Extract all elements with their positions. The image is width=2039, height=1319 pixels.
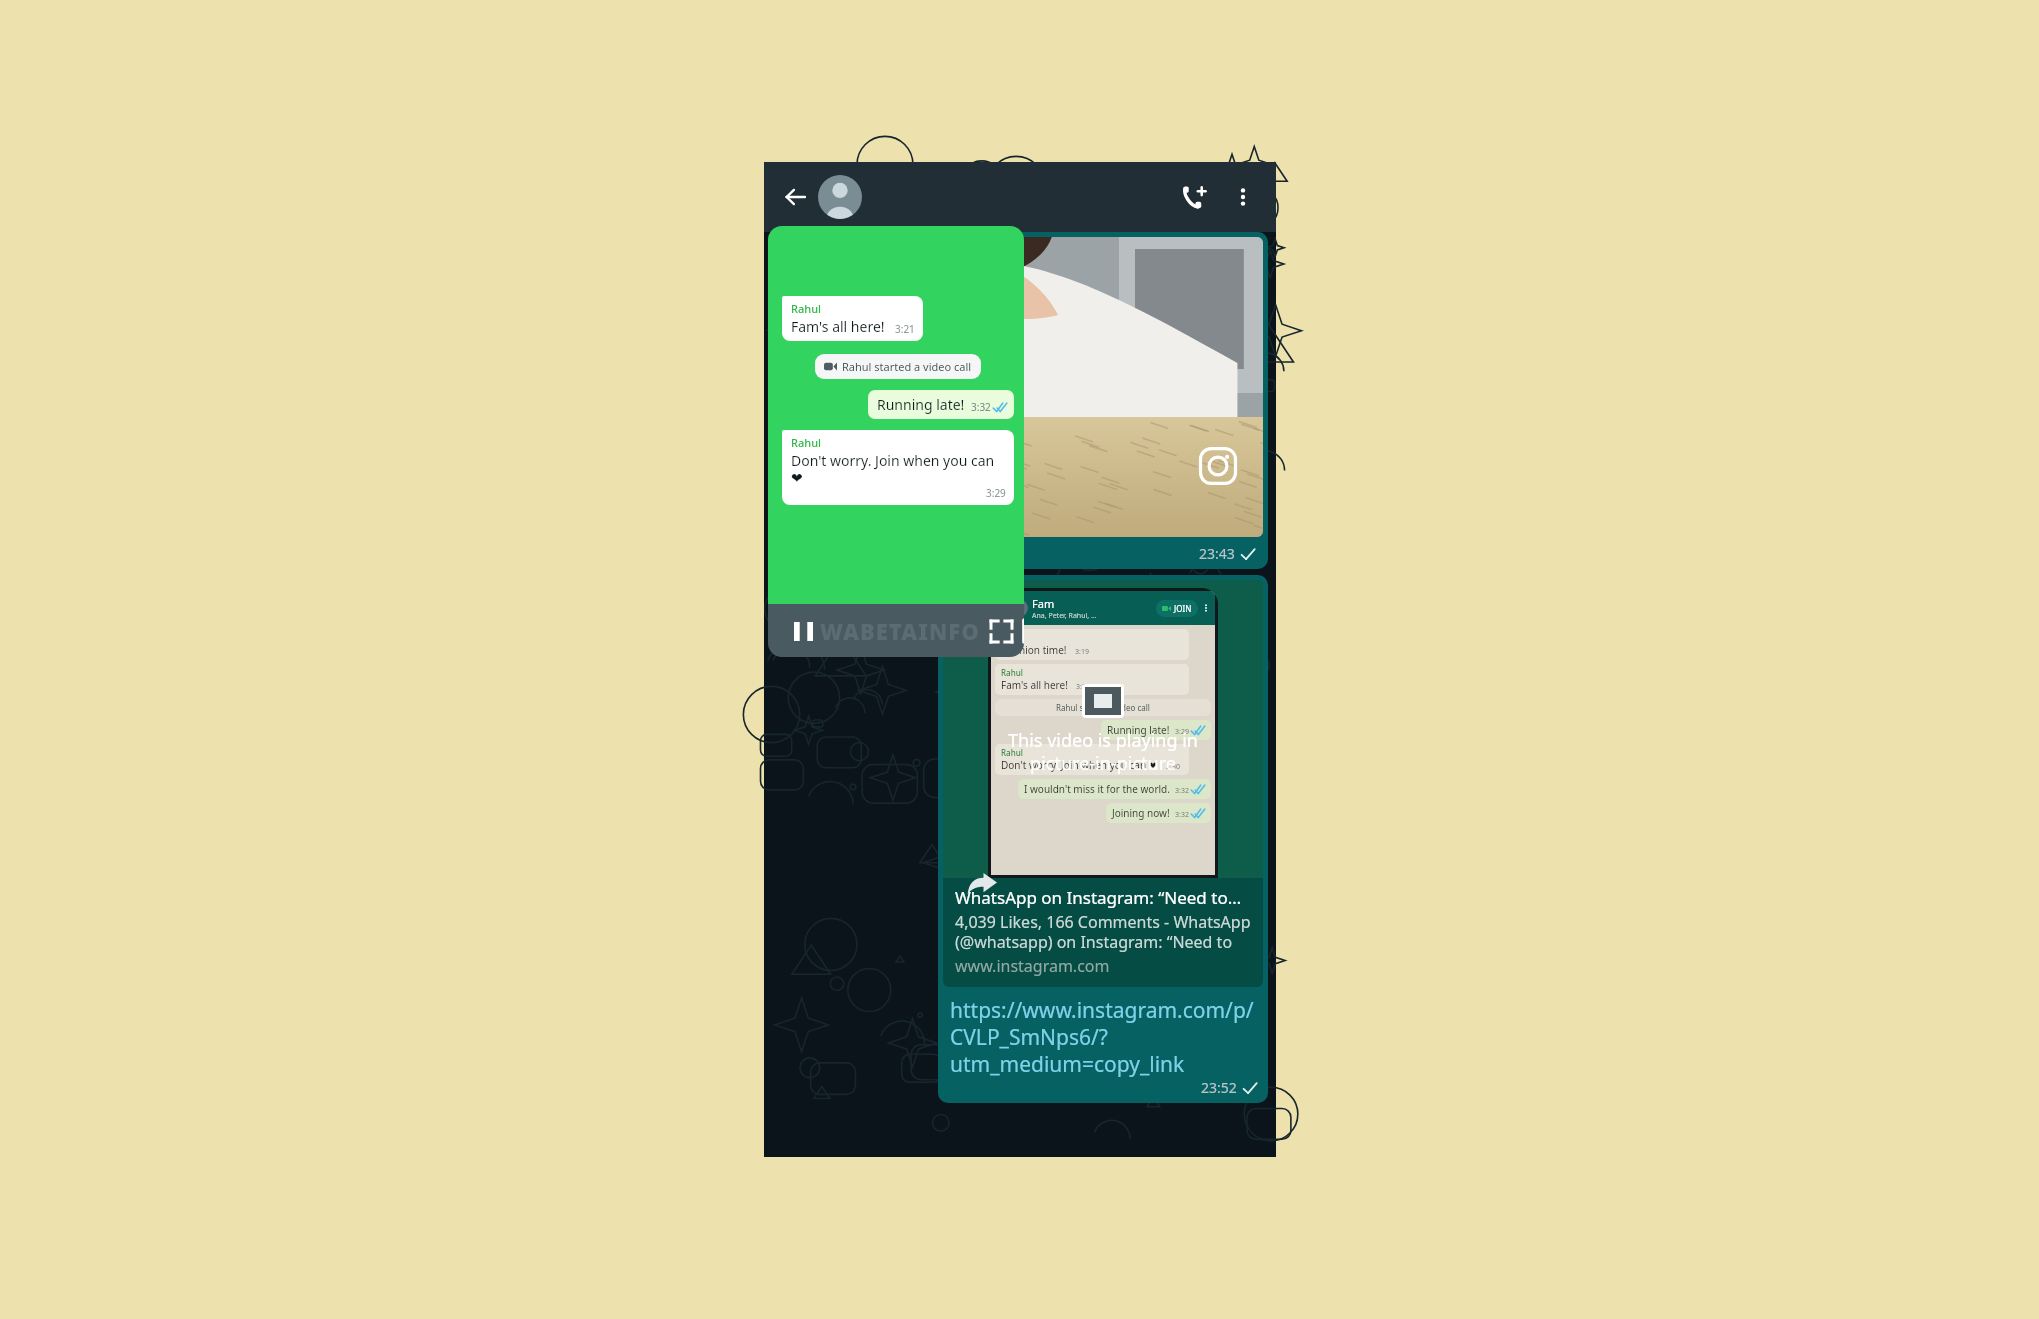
staticText: Joining now! xyxy=(1112,806,1170,820)
staticText: Rahul started a video call xyxy=(1056,702,1150,713)
button[interactable]: Profile photo xyxy=(818,175,862,219)
staticText: Ana, Peter, Rahul, … xyxy=(1032,611,1097,621)
button[interactable]: Pause xyxy=(786,614,820,648)
staticText: WABETAINFO xyxy=(820,616,980,646)
staticText: Fam's all here! xyxy=(1001,678,1068,692)
staticText: Don't worry. Join when you can ❤️ xyxy=(1001,758,1158,772)
staticText: Rahul started a video call xyxy=(842,359,972,374)
staticText: JOIN xyxy=(1174,603,1192,614)
staticText: 3:29 xyxy=(986,486,1006,500)
staticText: Rahul xyxy=(1001,667,1023,678)
staticText: Reunion time! xyxy=(1001,643,1067,657)
staticText: 23:43 xyxy=(1199,544,1235,563)
staticText: 3:21 xyxy=(1076,682,1090,692)
staticText: www.instagram.com xyxy=(955,955,1110,977)
staticText: 3:19 xyxy=(1075,647,1089,657)
staticText: Rahul xyxy=(791,301,822,316)
staticText: 3:29 xyxy=(1175,727,1189,737)
staticText: 3:30 xyxy=(1166,762,1180,772)
staticText: Rahul xyxy=(791,435,822,450)
staticText: Running late! xyxy=(1107,723,1170,737)
button[interactable]: More options xyxy=(1222,176,1264,218)
staticText: 3:32 xyxy=(971,400,991,414)
button[interactable]: Forward xyxy=(962,862,1002,902)
staticText: 3:21 xyxy=(895,322,915,336)
staticText: WhatsApp on Instagram: “Need to… xyxy=(955,886,1242,909)
staticText: https://www.instagram.com/p/CVLP_SmNps6/… xyxy=(950,996,1258,1078)
staticText: Rahul xyxy=(1001,747,1023,758)
staticText: Ana xyxy=(1001,632,1016,643)
staticText: 3:32 xyxy=(1175,810,1189,820)
button[interactable]: Back xyxy=(776,178,814,216)
button[interactable]: 23:43 xyxy=(938,232,1268,569)
staticText: 3:32 xyxy=(1175,786,1189,796)
button[interactable]: New call xyxy=(1174,176,1216,218)
staticText: 4,039 Likes, 166 Comments - WhatsApp (@w… xyxy=(955,911,1253,952)
staticText: Running late! xyxy=(877,395,965,414)
staticText: Don't worry. Join when you can ❤️ xyxy=(791,451,1006,486)
staticText: Fam's all here! xyxy=(791,317,885,336)
button[interactable]: Expand to full screen xyxy=(984,614,1018,648)
staticText: Fam xyxy=(1032,596,1055,611)
staticText: I wouldn't miss it for the world. xyxy=(1024,782,1170,796)
button[interactable]: Fam xyxy=(938,575,1268,1103)
staticText: This video is playing in picture-in-pict… xyxy=(1003,728,1203,775)
staticText: 23:52 xyxy=(1201,1078,1237,1097)
